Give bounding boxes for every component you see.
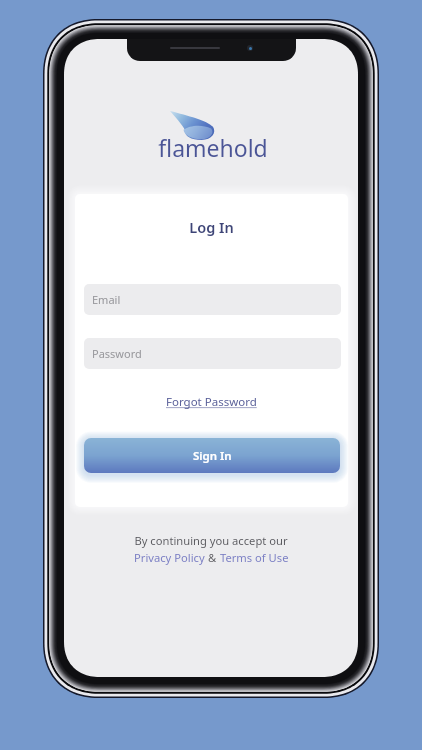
staticText: Privacy Policy — [134, 550, 205, 565]
staticText: Forgot Password — [166, 394, 257, 410]
staticText: Password — [92, 346, 142, 361]
staticText: By continuing you accept our — [134, 533, 288, 548]
button[interactable]: Email — [84, 284, 341, 315]
button[interactable]: Sign In — [84, 438, 340, 473]
staticText: Terms of Use — [220, 550, 289, 565]
staticText: flamehold — [66, 132, 358, 163]
button[interactable]: Password — [84, 338, 341, 369]
staticText: Email — [92, 292, 121, 307]
button[interactable]: Privacy Policy — [134, 550, 205, 565]
button[interactable]: Forgot Password — [166, 394, 257, 410]
staticText: Log In — [75, 217, 348, 237]
button[interactable]: Terms of Use — [220, 550, 289, 565]
staticText: Sign In — [193, 448, 232, 464]
staticText: & — [205, 550, 220, 565]
